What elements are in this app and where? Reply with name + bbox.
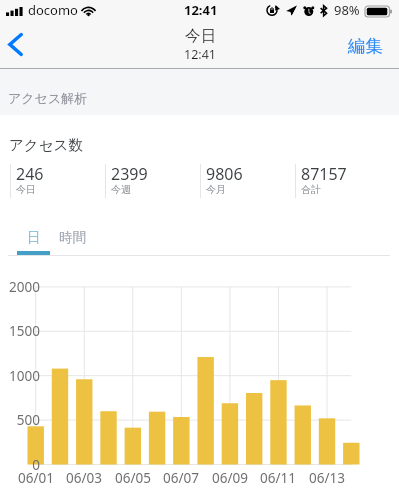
staticText: 合計: [301, 183, 321, 196]
staticText: 98%: [334, 1, 360, 19]
staticText: 06/03: [66, 469, 102, 487]
staticText: 12:41: [184, 46, 216, 63]
staticText: 1000: [9, 367, 40, 385]
button[interactable]: 日: [17, 221, 50, 253]
staticText: 今日: [16, 183, 36, 196]
staticText: 12:41: [184, 1, 218, 19]
staticText: 今月: [206, 183, 226, 196]
button[interactable]: 2399: [105, 164, 200, 198]
staticText: 500: [16, 411, 40, 429]
button[interactable]: 時間: [50, 221, 95, 253]
staticText: 0: [32, 456, 40, 474]
staticText: 2000: [9, 278, 40, 296]
staticText: 87157: [301, 163, 347, 185]
staticText: docomo: [28, 1, 78, 19]
staticText: 06/13: [309, 469, 345, 487]
staticText: 日: [27, 229, 41, 246]
staticText: 今日: [185, 26, 216, 46]
button[interactable]: Back: [0, 23, 44, 67]
staticText: 06/05: [115, 469, 151, 487]
staticText: 9806: [206, 163, 243, 185]
button[interactable]: 編集: [339, 28, 391, 64]
staticText: アクセス解析: [8, 90, 88, 106]
staticText: 06/09: [212, 469, 248, 487]
staticText: アクセス数: [9, 136, 83, 154]
staticText: 今週: [111, 183, 131, 196]
staticText: 06/07: [163, 469, 199, 487]
staticText: 246: [16, 163, 44, 185]
staticText: 時間: [59, 229, 86, 246]
button[interactable]: 246: [10, 164, 105, 198]
button[interactable]: 87157: [295, 164, 390, 198]
staticText: 06/11: [260, 469, 296, 487]
staticText: 編集: [348, 35, 383, 57]
staticText: 1500: [9, 322, 40, 340]
button[interactable]: 9806: [200, 164, 295, 198]
staticText: 2399: [111, 163, 148, 185]
staticText: 06/01: [18, 469, 54, 487]
